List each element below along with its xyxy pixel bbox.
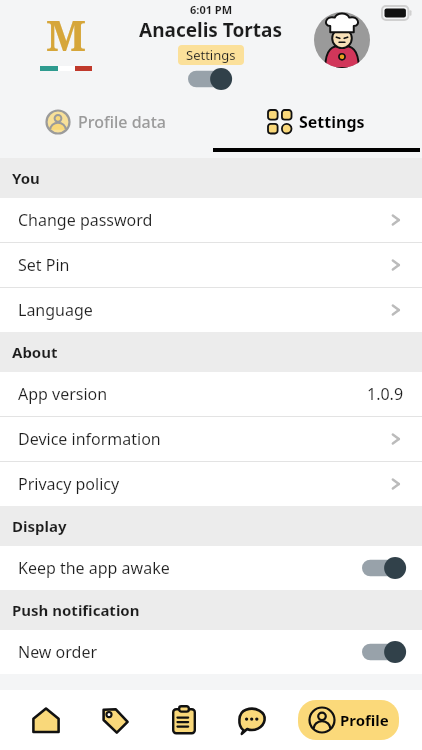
button[interactable]: Mode toggle (188, 68, 234, 90)
staticText: New order (18, 641, 98, 663)
staticText: App version (18, 383, 108, 405)
staticText: About (12, 342, 58, 362)
button[interactable]: Logo (40, 6, 92, 71)
button[interactable]: Keep the app awake (0, 546, 422, 590)
button[interactable]: Privacy policy (0, 462, 422, 506)
button[interactable]: Home (23, 697, 69, 743)
button[interactable]: Settings (178, 45, 244, 65)
button[interactable]: Set Pin (0, 243, 422, 287)
staticText: Keep the app awake (18, 557, 170, 579)
staticText: Change password (18, 209, 153, 231)
button[interactable]: Language (0, 288, 422, 332)
button[interactable]: Settings (211, 96, 422, 148)
button[interactable]: Profile avatar (314, 12, 370, 68)
staticText: Push notification (12, 600, 140, 620)
staticText: 6:01 PM (190, 2, 233, 17)
button[interactable]: Profile (298, 700, 399, 740)
staticText: Profile data (78, 111, 167, 133)
button[interactable]: Messages (229, 697, 275, 743)
button[interactable]: Change password (0, 198, 422, 242)
staticText: M (46, 6, 86, 63)
staticText: You (12, 168, 40, 188)
staticText: Anacelis Tortas (139, 17, 283, 43)
other: New order (362, 641, 408, 663)
staticText: Language (18, 299, 93, 321)
button[interactable]: Profile data (0, 96, 211, 148)
staticText: Settings (186, 46, 236, 64)
button[interactable]: Device information (0, 417, 422, 461)
staticText: Profile (340, 710, 389, 730)
button[interactable]: Offers (92, 697, 138, 743)
staticText: 1.0.9 (367, 383, 404, 405)
button[interactable]: New order (0, 630, 422, 674)
other: Keep the app awake (362, 557, 408, 579)
staticText: Device information (18, 428, 161, 450)
button[interactable]: Orders (161, 697, 207, 743)
staticText: Set Pin (18, 254, 70, 276)
staticText: Privacy policy (18, 473, 120, 495)
staticText: Settings (299, 111, 365, 133)
staticText: Display (12, 516, 67, 536)
button[interactable]: App version (0, 372, 422, 416)
